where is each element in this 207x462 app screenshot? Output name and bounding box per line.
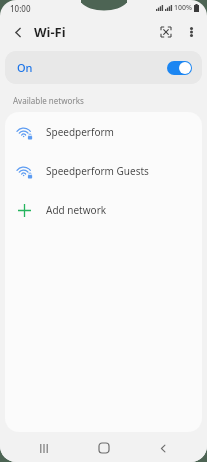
- button[interactable]: Speedperform: [5, 112, 202, 151]
- button[interactable]: Home: [88, 434, 120, 462]
- button[interactable]: On: [5, 51, 202, 84]
- staticText: Add network: [46, 203, 107, 217]
- staticText: Speedperform Guests: [46, 164, 149, 178]
- staticText: On: [17, 60, 33, 75]
- button[interactable]: More options: [182, 23, 200, 41]
- button[interactable]: Back: [147, 434, 179, 462]
- button[interactable]: Wi-Fi on: [167, 61, 192, 75]
- button[interactable]: Speedperform Guests: [5, 151, 202, 190]
- staticText: Wi-Fi: [34, 23, 66, 41]
- staticText: Available networks: [13, 95, 84, 106]
- button[interactable]: Add network: [5, 190, 202, 229]
- button[interactable]: Recent apps: [28, 434, 60, 462]
- button[interactable]: Back: [7, 21, 29, 43]
- staticText: 100%: [174, 3, 192, 13]
- staticText: Speedperform: [46, 125, 114, 139]
- staticText: 10:00: [10, 3, 31, 14]
- button[interactable]: Scan QR code: [155, 21, 177, 43]
